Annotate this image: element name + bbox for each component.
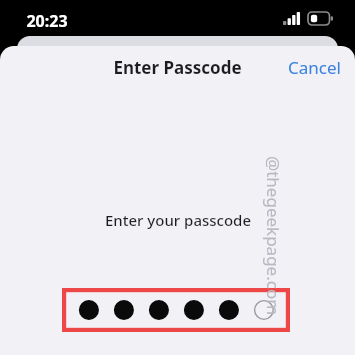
button[interactable]: Cancel xyxy=(274,50,355,85)
staticText: Cancel xyxy=(288,56,341,79)
button[interactable]: Passcode entry field xyxy=(62,288,290,332)
staticText: Enter Passcode xyxy=(113,56,242,79)
staticText: 20:23 xyxy=(26,10,68,32)
staticText: Enter your passcode xyxy=(105,210,251,230)
staticText: @thegeekpage.com xyxy=(261,155,284,315)
